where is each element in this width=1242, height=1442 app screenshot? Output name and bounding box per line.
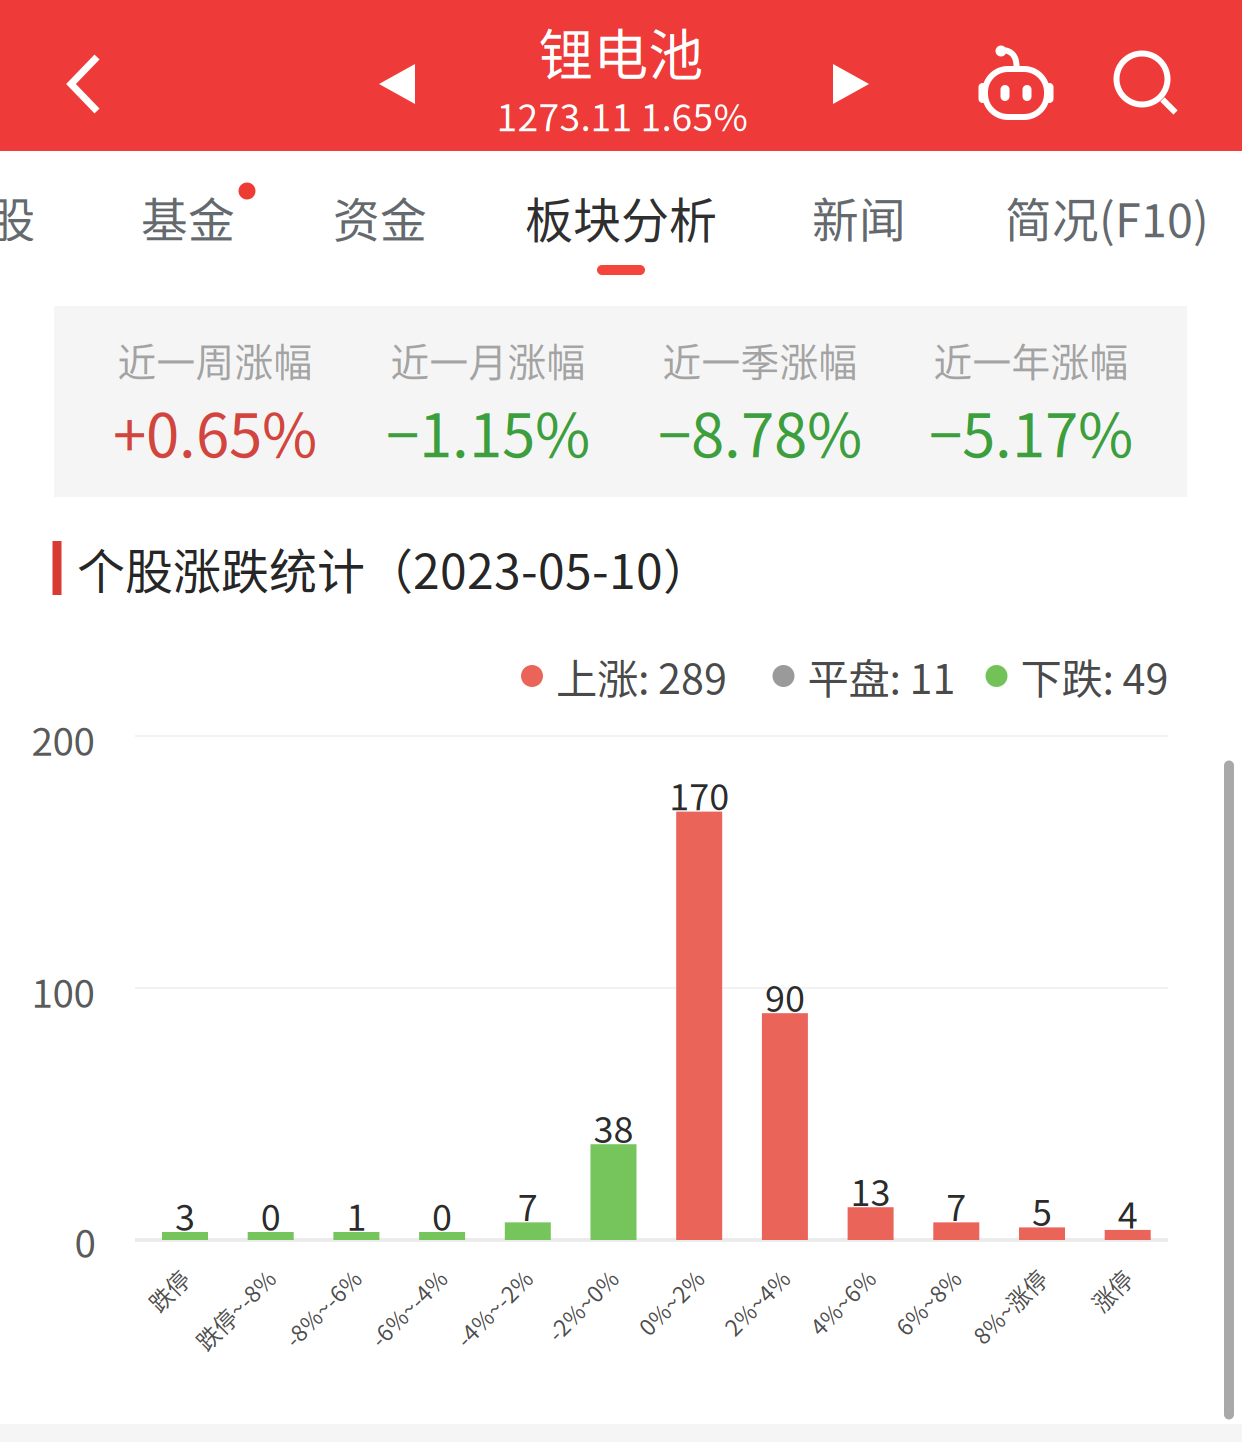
staticText: 1273.11 1.65%	[496, 88, 747, 142]
staticText: 38	[593, 1101, 633, 1153]
staticText: 股	[0, 183, 35, 251]
staticText: -8%~-6%	[274, 1291, 371, 1324]
staticText: 上涨: 289	[556, 646, 727, 706]
staticText: 7	[518, 1179, 538, 1231]
staticText: 涨停	[1088, 1274, 1134, 1307]
button[interactable]: Previous sector	[337, 8, 457, 159]
staticText: 跌停	[146, 1274, 192, 1307]
button[interactable]: Back	[9, 8, 159, 159]
staticText: 新闻	[812, 183, 906, 251]
staticText: 近一周涨幅	[117, 332, 312, 388]
button[interactable]: 简况(F10)	[987, 141, 1227, 293]
staticText: 3	[175, 1189, 195, 1241]
staticText: 13	[851, 1164, 891, 1216]
staticText: 200	[31, 711, 94, 767]
staticText: −1.15%	[386, 388, 590, 474]
button[interactable]: 基金	[108, 141, 268, 293]
staticText: 跌停~-8%	[185, 1293, 286, 1326]
staticText: 6%~8%	[888, 1286, 969, 1319]
button[interactable]: 板块分析	[506, 141, 736, 293]
staticText: 90	[765, 970, 805, 1022]
button[interactable]: 新闻	[779, 141, 939, 293]
staticText: -4%~-2%	[445, 1291, 542, 1324]
staticText: 2%~4%	[716, 1286, 797, 1319]
button[interactable]: 资金	[300, 141, 460, 293]
button[interactable]: 股	[0, 141, 72, 293]
staticText: 0	[432, 1189, 452, 1241]
staticText: 0	[261, 1189, 281, 1241]
staticText: 近一季涨幅	[662, 332, 857, 388]
staticText: 0	[74, 1213, 95, 1269]
staticText: 个股涨跌统计（2023-05-10）	[77, 533, 711, 603]
staticText: 1	[346, 1189, 366, 1241]
staticText: 170	[669, 768, 729, 821]
staticText: 7	[946, 1179, 966, 1231]
staticText: 0%~2%	[630, 1286, 711, 1319]
staticText: 简况(F10)	[1005, 183, 1209, 251]
button[interactable]: Search	[1081, 7, 1211, 158]
staticText: 平盘: 11	[807, 646, 955, 706]
button[interactable]: Next sector	[791, 8, 911, 159]
staticText: 资金	[333, 183, 427, 251]
staticText: 基金	[141, 183, 235, 251]
staticText: -6%~-4%	[360, 1291, 457, 1324]
staticText: 8%~涨停	[963, 1290, 1056, 1323]
staticText: 板块分析	[525, 182, 717, 252]
staticText: 近一年涨幅	[933, 332, 1128, 388]
staticText: 锂电池	[538, 11, 703, 91]
staticText: −5.17%	[929, 388, 1133, 474]
staticText: -2%~0%	[538, 1289, 627, 1321]
staticText: 4%~6%	[802, 1286, 883, 1319]
staticText: +0.65%	[113, 388, 317, 474]
staticText: 下跌: 49	[1020, 646, 1168, 706]
staticText: −8.78%	[658, 388, 862, 474]
staticText: 近一月涨幅	[390, 332, 585, 388]
staticText: 100	[31, 963, 94, 1019]
staticText: 5	[1032, 1184, 1052, 1236]
staticText: 4	[1118, 1187, 1138, 1239]
button[interactable]: AI assistant	[951, 11, 1081, 162]
